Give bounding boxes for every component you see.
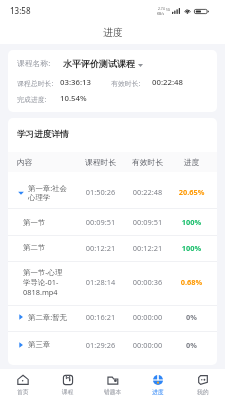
- staticText: 首页: [17, 388, 29, 395]
- staticText: 第一节-心理 学导论-01- 0818.mp4: [23, 267, 68, 297]
- staticText: 20.65%: [166, 187, 217, 197]
- staticText: 第三章: [28, 340, 72, 349]
- staticText: 进度: [152, 388, 164, 395]
- staticText: 0.68%: [166, 277, 217, 287]
- staticText: 水平评价测试课程: [63, 58, 135, 69]
- staticText: 00:00:00: [129, 340, 166, 350]
- staticText: 完成进度:: [17, 95, 60, 104]
- staticText: 10.54%: [60, 93, 87, 104]
- staticText: 00:09:51: [129, 217, 166, 227]
- staticText: 01:50:26: [72, 187, 129, 197]
- staticText: KB/s: [157, 11, 165, 16]
- staticText: 第二章:暂无: [28, 312, 72, 322]
- button[interactable]: 第一节: [8, 209, 217, 235]
- staticText: 01:29:26: [72, 340, 129, 350]
- button[interactable]: 错题本: [90, 369, 135, 400]
- button[interactable]: 第三章: [8, 332, 217, 365]
- staticText: 进度: [103, 26, 123, 39]
- staticText: 学习进度详情: [17, 129, 69, 140]
- staticText: 00:16:21: [72, 312, 129, 322]
- staticText: 2.74: [158, 6, 165, 11]
- staticText: 5G: [166, 8, 171, 12]
- staticText: 0%: [166, 312, 217, 322]
- staticText: 00:12:21: [72, 243, 129, 253]
- staticText: 课程名称:: [17, 58, 63, 69]
- button[interactable]: 课程: [45, 369, 90, 400]
- staticText: 03:36:13: [60, 77, 111, 88]
- button[interactable]: 进度: [135, 369, 180, 400]
- staticText: 内容: [17, 157, 72, 167]
- staticText: 课程时长: [72, 157, 129, 167]
- staticText: 第一节: [23, 218, 68, 227]
- button[interactable]: 第二节: [8, 236, 217, 261]
- staticText: 错题本: [104, 388, 122, 395]
- staticText: 我的: [197, 388, 209, 395]
- staticText: 有效时长:: [111, 79, 152, 88]
- staticText: 0%: [166, 340, 217, 350]
- staticText: 00:12:21: [129, 243, 166, 253]
- staticText: 00:22:48: [129, 187, 166, 197]
- button[interactable]: 我的: [180, 369, 225, 400]
- staticText: 第二节: [23, 243, 68, 252]
- staticText: 100%: [166, 217, 217, 227]
- button[interactable]: 第一节-心理 学导论-01- 0818.mp4: [8, 262, 217, 305]
- staticText: 01:28:14: [72, 277, 129, 287]
- staticText: 00:22:48: [152, 77, 183, 88]
- staticText: 00:00:36: [129, 277, 166, 287]
- staticText: 进度: [166, 157, 217, 167]
- staticText: 13:58: [10, 5, 31, 16]
- staticText: 00:00:00: [129, 312, 166, 322]
- staticText: 课程: [62, 388, 74, 395]
- staticText: 100%: [166, 243, 217, 253]
- staticText: 有效时长: [129, 157, 166, 167]
- staticText: 00:09:51: [72, 217, 129, 227]
- button[interactable]: 第一章:社会 心理学: [8, 172, 217, 208]
- button[interactable]: 首页: [0, 369, 45, 400]
- staticText: 课程总时长:: [17, 79, 60, 88]
- staticText: 第一章:社会 心理学: [28, 183, 72, 202]
- button[interactable]: 第二章:暂无: [8, 306, 217, 331]
